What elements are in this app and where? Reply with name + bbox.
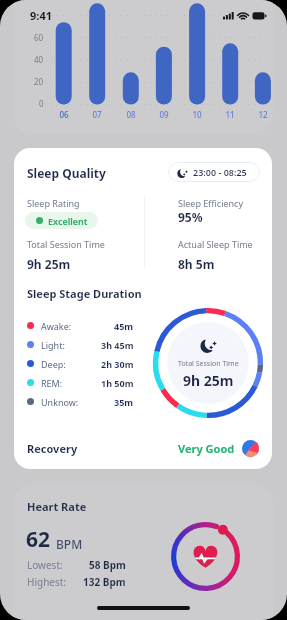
staticText: REM: <box>41 377 63 389</box>
staticText: 08 <box>126 109 136 120</box>
staticText: Very Good <box>178 441 235 456</box>
staticText: 35m <box>114 396 134 408</box>
button[interactable]: Excellent <box>25 212 98 229</box>
staticText: 23:00 - 08:25 <box>193 166 247 178</box>
staticText: Sleep Stage Duration <box>27 286 142 301</box>
staticText: 09 <box>159 109 169 120</box>
staticText: Highest: <box>27 575 67 589</box>
staticText: Recovery <box>27 441 78 456</box>
staticText: 06 <box>59 109 69 120</box>
staticText: 3h 45m <box>101 339 134 351</box>
staticText: Lowest: <box>27 558 63 572</box>
button[interactable]: Recovery <box>14 431 272 465</box>
staticText: Heart Rate <box>27 499 87 514</box>
staticText: 12 <box>258 109 268 120</box>
staticText: Sleep Rating <box>27 197 80 209</box>
staticText: 9:41 <box>30 8 52 23</box>
staticText: 2h 30m <box>101 358 134 370</box>
staticText: 9h 25m <box>183 371 234 390</box>
staticText: 132 Bpm <box>83 575 126 589</box>
staticText: Unknow: <box>41 396 79 408</box>
staticText: 58 Bpm <box>89 558 126 572</box>
staticText: 20 <box>34 76 44 87</box>
staticText: 10 <box>192 109 202 120</box>
staticText: 11 <box>225 109 235 120</box>
staticText: Sleep Quality <box>27 165 106 181</box>
staticText: 62 <box>26 525 51 554</box>
staticText: Sleep Efficiency <box>178 197 243 209</box>
staticText: Total Session Time <box>27 238 105 250</box>
staticText: Excellent <box>48 215 88 227</box>
staticText: BPM <box>56 536 83 552</box>
staticText: 40 <box>34 54 44 65</box>
staticText: 45m <box>114 320 134 332</box>
staticText: 07 <box>92 109 102 120</box>
staticText: 60 <box>34 32 44 43</box>
staticText: Deep: <box>41 358 66 370</box>
staticText: 8h 5m <box>178 256 215 272</box>
button[interactable]: 23:00 - 08:25 <box>168 162 260 182</box>
staticText: Awake: <box>41 320 72 332</box>
staticText: 95% <box>178 209 203 225</box>
staticText: Actual Sleep Time <box>178 238 253 250</box>
staticText: Total Session Time <box>178 359 239 369</box>
staticText: 9h 25m <box>27 256 71 272</box>
staticText: Light: <box>41 339 65 351</box>
staticText: 1h 50m <box>101 377 134 389</box>
staticText: 0 <box>39 98 44 109</box>
